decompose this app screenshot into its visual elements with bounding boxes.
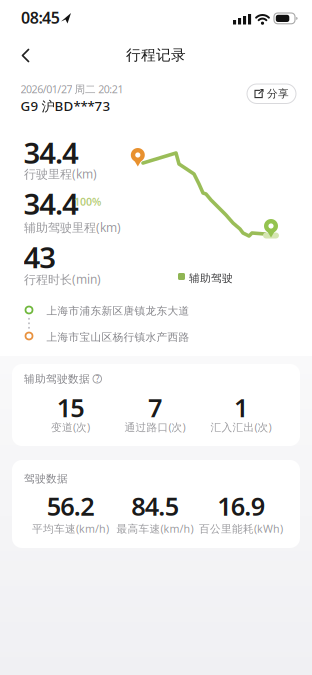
staticText: 变道(次) (51, 420, 90, 434)
staticText: 56.2 (47, 489, 94, 523)
staticText: 2026/01/27 周二 20:21 (20, 82, 123, 96)
staticText: 辅助驾驶里程(km) (24, 219, 121, 235)
staticText: 平均车速(km/h) (32, 521, 109, 536)
staticText: 上海市浦东新区唐镇龙东大道 (46, 304, 189, 317)
staticText: 1 (234, 391, 248, 424)
staticText: 驾驶数据 (24, 472, 68, 485)
staticText: 通过路口(次) (124, 420, 185, 434)
staticText: 08:45 (21, 7, 60, 28)
staticText: 34.4 (23, 133, 79, 172)
staticText: 34.4 (23, 184, 79, 223)
staticText: 百公里能耗(kWh) (199, 521, 283, 536)
staticText: 最高车速(km/h) (116, 521, 193, 536)
staticText: 84.5 (131, 489, 179, 523)
staticText: 分享 (267, 87, 289, 100)
staticText: ? (96, 373, 99, 384)
staticText: 16.9 (217, 489, 265, 523)
staticText: 行程记录 (126, 46, 186, 64)
staticText: 辅助驾驶 (189, 272, 233, 285)
staticText: 15 (57, 391, 84, 424)
staticText: G9 沪BD***73 (20, 97, 110, 115)
staticText: 行驶里程(km) (24, 166, 97, 182)
staticText: 行程时长(min) (24, 271, 101, 287)
staticText: 辅助驾驶数据 (24, 372, 90, 385)
staticText: 7 (148, 391, 162, 424)
staticText: 43 (23, 237, 56, 276)
staticText: 100% (74, 194, 101, 209)
staticText: 上海市宝山区杨行镇水产西路 (46, 331, 189, 344)
staticText: 汇入汇出(次) (210, 420, 271, 434)
